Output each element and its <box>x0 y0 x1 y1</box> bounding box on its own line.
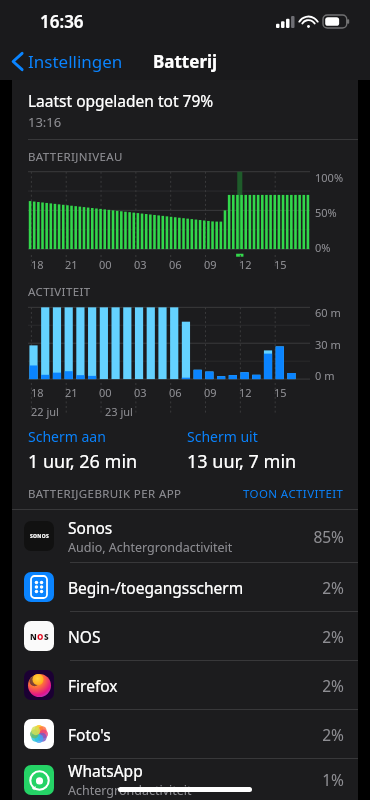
staticText: 15 <box>274 257 287 272</box>
staticText: 12 <box>239 257 252 272</box>
staticText: Instellingen <box>28 50 123 73</box>
staticText: 09 <box>204 257 217 272</box>
staticText: Audio, Achtergrondactiviteit <box>68 539 233 556</box>
staticText: BATTERIJGEBRUIK PER APP <box>28 486 182 502</box>
staticText: SONOS <box>30 533 49 540</box>
staticText: 60 m <box>315 305 341 320</box>
staticText: ACTIVITEIT <box>28 284 91 300</box>
staticText: Scherm aan <box>28 427 106 446</box>
staticText: Sonos <box>68 517 113 538</box>
staticText: 03 <box>134 257 147 272</box>
staticText: 09 <box>204 385 217 400</box>
staticText: TOON ACTIVITEIT <box>243 486 344 502</box>
staticText: 00 <box>99 257 112 272</box>
staticText: 00 <box>99 385 112 400</box>
staticText: 2% <box>322 724 344 745</box>
staticText: 06 <box>169 385 182 400</box>
staticText: 1 uur, 26 min <box>28 449 138 474</box>
staticText: 21 <box>65 385 78 400</box>
button[interactable]: Firefox <box>12 661 358 709</box>
staticText: 0 m <box>315 368 335 383</box>
staticText: 13:16 <box>28 113 62 131</box>
staticText: 18 <box>31 385 44 400</box>
staticText: 1% <box>322 769 344 790</box>
staticText: 21 <box>65 257 78 272</box>
button[interactable]: Begin-/toegangsscherm <box>12 563 358 611</box>
staticText: 2% <box>322 626 344 647</box>
staticText: 0% <box>315 240 331 255</box>
staticText: 12 <box>239 385 252 400</box>
staticText: Laatst opgeladen tot 79% <box>28 90 214 111</box>
staticText: 23 jul <box>105 404 133 419</box>
staticText: 13 uur, 7 min <box>187 449 297 474</box>
staticText: 15 <box>274 385 287 400</box>
staticText: 03 <box>134 385 147 400</box>
staticText: Batterij <box>153 50 218 73</box>
staticText: Begin-/toegangsscherm <box>68 577 244 598</box>
staticText: O <box>37 631 44 642</box>
staticText: S <box>44 631 49 642</box>
button[interactable]: TOON ACTIVITEIT <box>243 486 344 502</box>
staticText: 2% <box>322 675 344 696</box>
staticText: Firefox <box>68 675 118 696</box>
button[interactable]: Foto's <box>12 710 358 758</box>
staticText: WhatsApp <box>68 760 143 781</box>
staticText: NOS <box>68 626 101 647</box>
staticText: 30 m <box>315 337 341 352</box>
staticText: 22 jul <box>31 404 59 419</box>
button[interactable]: Instellingen <box>8 46 127 77</box>
staticText: 18 <box>31 257 44 272</box>
staticText: 100% <box>315 170 344 185</box>
staticText: 06 <box>169 257 182 272</box>
staticText: Scherm uit <box>187 427 258 446</box>
button[interactable]: SONOS <box>12 510 358 562</box>
staticText: 16:36 <box>40 10 84 33</box>
button[interactable]: WhatsApp <box>12 759 358 800</box>
staticText: 85% <box>313 526 344 547</box>
staticText: Achtergrondactiviteit <box>68 782 192 799</box>
staticText: 50% <box>315 205 337 220</box>
staticText: Foto's <box>68 724 111 745</box>
staticText: BATTERIJNIVEAU <box>28 149 123 165</box>
staticText: 2% <box>322 577 344 598</box>
button[interactable]: N <box>12 612 358 660</box>
staticText: N <box>30 631 37 642</box>
